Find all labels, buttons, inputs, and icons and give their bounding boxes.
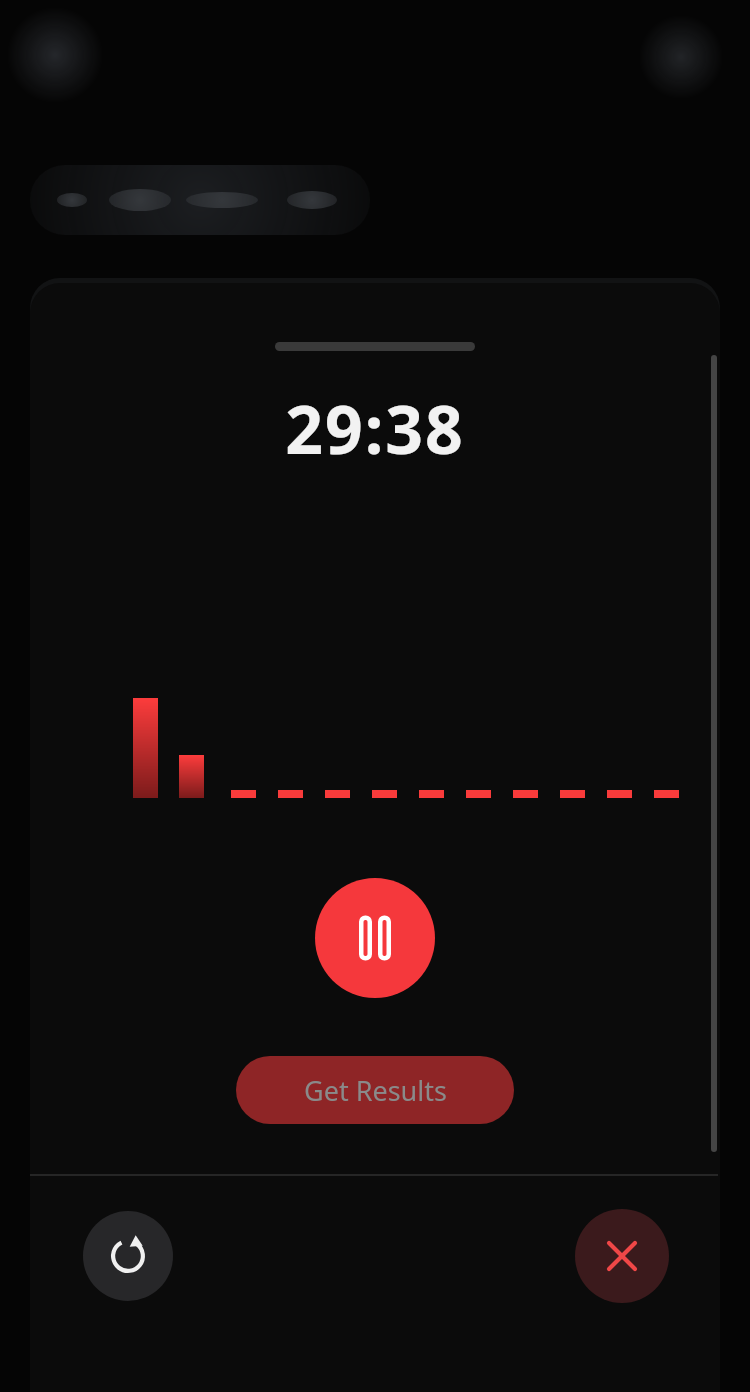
button[interactable]: Pause xyxy=(315,878,435,998)
button[interactable]: Restart xyxy=(83,1211,173,1301)
button[interactable]: Close xyxy=(575,1209,669,1303)
staticText: 29:38 xyxy=(30,383,720,473)
staticText: Get Results xyxy=(304,1072,447,1109)
button[interactable]: Get Results xyxy=(236,1056,514,1124)
